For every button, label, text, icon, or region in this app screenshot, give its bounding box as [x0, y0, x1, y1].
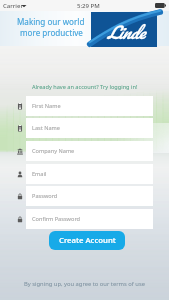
staticText: Confirm Password — [32, 215, 81, 223]
staticText: Carrier — [3, 2, 23, 10]
staticText: By signing up, you agree to our terms of… — [24, 280, 145, 288]
button[interactable]: Password — [10, 186, 153, 206]
staticText: Already have an account? Try logging in! — [32, 83, 138, 91]
button[interactable]: Create Account — [49, 231, 125, 250]
staticText: Company Name — [32, 147, 75, 155]
staticText: Password — [32, 192, 58, 200]
staticText: 5:29 PM — [77, 2, 100, 10]
button[interactable]: Confirm Password — [10, 209, 153, 229]
button[interactable]: Last Name — [10, 118, 153, 138]
button[interactable]: First Name — [10, 96, 153, 116]
staticText: Last Name — [32, 124, 60, 132]
button[interactable]: Company Name — [10, 141, 153, 161]
button[interactable]: Already have an account? Try logging in! — [20, 82, 150, 92]
staticText: First Name — [32, 102, 61, 110]
staticText: Create Account — [59, 235, 116, 246]
staticText: Making our world — [17, 16, 85, 27]
button[interactable]: Email — [10, 164, 153, 184]
staticText: more productive — [20, 27, 83, 38]
staticText: Linde — [107, 18, 145, 46]
staticText: Email — [32, 170, 47, 178]
